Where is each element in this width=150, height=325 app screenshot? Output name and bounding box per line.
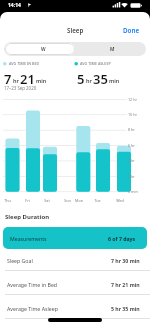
staticText: hr <box>13 77 19 84</box>
staticText: 10 hr <box>128 112 137 117</box>
staticText: AVG TIME ASLEEP <box>80 61 111 66</box>
staticText: Done <box>123 26 140 35</box>
staticText: Wed <box>116 198 124 203</box>
staticText: Average Time in Bed <box>7 281 58 288</box>
staticText: hr <box>86 77 92 84</box>
staticText: 4 hr <box>128 158 135 163</box>
staticText: Mon <box>75 198 83 203</box>
staticText: min <box>36 77 47 84</box>
staticText: 12 hr <box>128 97 137 102</box>
staticText: 17–23 Sep 2020 <box>4 85 37 91</box>
staticText: Sleep <box>67 26 84 34</box>
staticText: 6 of 7 days <box>108 235 136 242</box>
staticText: Sat <box>44 198 50 203</box>
staticText: 5 hr 35 min <box>111 305 140 312</box>
staticText: Measurements <box>10 235 47 242</box>
staticText: M <box>110 46 115 53</box>
button[interactable]: Done <box>117 25 145 35</box>
staticText: Thu <box>4 198 11 203</box>
staticText: 8 hr <box>128 127 135 132</box>
button[interactable]: Sleep Goal <box>0 248 150 272</box>
staticText: AVG TIME IN BED <box>9 61 40 66</box>
staticText: 14:14 <box>8 2 21 9</box>
button[interactable] <box>5 43 75 55</box>
button[interactable]: M <box>79 42 146 56</box>
staticText: W <box>41 46 46 53</box>
staticText: 7 <box>4 70 12 86</box>
button[interactable]: Average Time in Bed <box>0 272 150 296</box>
staticText: Average Time Asleep <box>7 305 58 312</box>
staticText: 7 hr 21 min <box>111 281 140 288</box>
staticText: min <box>109 77 120 84</box>
button[interactable]: Average Time Asleep <box>0 296 150 320</box>
staticText: 21 <box>20 70 35 86</box>
staticText: 6 hr <box>128 143 135 148</box>
button[interactable]: W <box>8 42 79 56</box>
staticText: Sun <box>64 198 71 203</box>
staticText: 35 <box>93 70 108 86</box>
staticText: 0 min <box>128 189 138 194</box>
staticText: Sleep Duration <box>5 213 50 221</box>
staticText: 7 hr 30 min <box>111 257 140 264</box>
staticText: Tue <box>94 198 101 203</box>
button[interactable]: Measurements <box>3 227 147 249</box>
staticText: Sleep Goal <box>7 257 33 264</box>
staticText: 2 hr <box>128 174 135 179</box>
staticText: 5 <box>77 70 85 86</box>
staticText: Fri <box>25 198 30 203</box>
